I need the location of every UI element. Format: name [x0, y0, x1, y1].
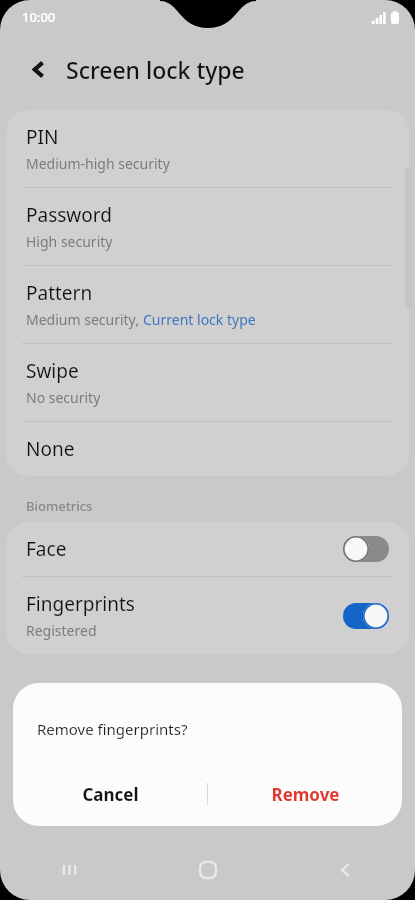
staticText: High security: [26, 232, 113, 251]
staticText: Registered: [26, 621, 97, 640]
button[interactable]: Password: [6, 188, 409, 265]
staticText: Cancel: [82, 783, 139, 806]
button[interactable]: Toggle off: [343, 536, 389, 562]
staticText: 10:00: [22, 8, 56, 26]
staticText: Swipe: [26, 358, 79, 384]
staticText: Remove: [271, 783, 340, 806]
staticText: PIN: [26, 124, 59, 150]
button[interactable]: Recents: [0, 840, 139, 900]
button[interactable]: Cancel: [13, 766, 207, 822]
staticText: Medium security,: [26, 310, 143, 329]
button[interactable]: PIN: [6, 110, 409, 187]
staticText: Fingerprints: [26, 591, 135, 617]
button[interactable]: Pattern: [6, 266, 409, 343]
staticText: None: [26, 436, 75, 462]
staticText: Remove fingerprints?: [37, 719, 188, 739]
staticText: Password: [26, 202, 112, 228]
button[interactable]: None: [6, 422, 409, 476]
button[interactable]: Toggle on: [343, 603, 389, 629]
staticText: Medium-high security: [26, 154, 170, 173]
button[interactable]: Fingerprints: [6, 577, 409, 654]
staticText: Current lock type: [143, 310, 256, 329]
staticText: Biometrics: [26, 497, 93, 515]
staticText: Pattern: [26, 280, 93, 306]
button[interactable]: Back: [22, 52, 56, 86]
staticText: No security: [26, 388, 101, 407]
button[interactable]: Swipe: [6, 344, 409, 421]
button[interactable]: Face: [6, 522, 409, 576]
button[interactable]: Back: [277, 840, 415, 900]
button[interactable]: Remove: [208, 766, 402, 822]
staticText: Screen lock type: [66, 54, 245, 85]
button[interactable]: Home: [139, 840, 277, 900]
staticText: Face: [26, 536, 67, 562]
